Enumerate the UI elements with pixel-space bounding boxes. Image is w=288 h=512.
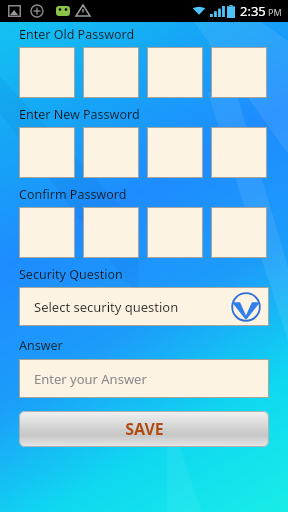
button[interactable]: Confirm password digit 1 — [19, 207, 75, 258]
button[interactable]: Select security question — [19, 287, 269, 326]
staticText: SAVE — [125, 418, 164, 440]
button[interactable]: Confirm password digit 4 — [211, 207, 267, 258]
staticText: 2:35 — [240, 2, 266, 20]
button[interactable]: Old password digit 1 — [19, 47, 75, 98]
button[interactable]: New password digit 1 — [19, 127, 75, 178]
button[interactable]: Confirm password digit 3 — [147, 207, 203, 258]
button[interactable]: New password digit 2 — [83, 127, 139, 178]
staticText: Answer — [19, 337, 63, 354]
button[interactable]: Enter your Answer — [19, 359, 269, 398]
button[interactable]: Confirm password digit 2 — [83, 207, 139, 258]
button[interactable]: Old password digit 3 — [147, 47, 203, 98]
staticText: Enter your Answer — [34, 370, 147, 388]
staticText: Enter New Password — [19, 106, 140, 123]
button[interactable]: SAVE — [19, 411, 269, 447]
button[interactable]: Old password digit 2 — [83, 47, 139, 98]
staticText: Enter Old Password — [19, 26, 135, 43]
staticText: PM — [268, 6, 282, 18]
staticText: Security Question — [19, 266, 123, 283]
button[interactable]: New password digit 3 — [147, 127, 203, 178]
button[interactable]: Old password digit 4 — [211, 47, 267, 98]
button[interactable]: New password digit 4 — [211, 127, 267, 178]
staticText: Select security question — [34, 298, 179, 316]
staticText: Confirm Password — [19, 186, 127, 203]
